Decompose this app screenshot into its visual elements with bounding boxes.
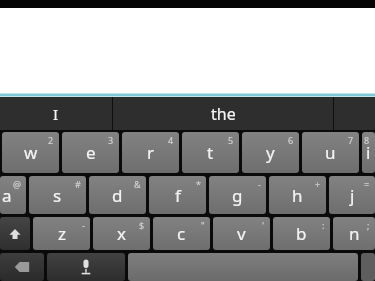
staticText: 6 [288,134,294,146]
staticText: ' [262,219,265,231]
staticText: - [258,178,261,190]
staticText: j [350,184,355,207]
staticText: x [117,222,126,245]
button[interactable]: j [329,176,375,214]
staticText: ; [367,219,370,231]
button[interactable]: n [333,217,375,250]
staticText: 2 [48,134,54,146]
staticText: " [201,219,205,231]
button[interactable]: w [2,132,59,173]
button[interactable]: r [122,132,179,173]
button[interactable]: a [0,176,26,214]
staticText: * [196,178,201,190]
staticText: the [211,103,236,125]
button[interactable]: h [269,176,326,214]
staticText: z [58,222,66,245]
button[interactable]: f [149,176,206,214]
staticText: n [349,222,360,245]
staticText: : [322,219,325,231]
button[interactable]: y [242,132,299,173]
staticText: v [237,222,246,245]
staticText: # [75,178,81,190]
staticText: 5 [228,134,234,146]
button[interactable]: u [302,132,359,173]
staticText: i [366,141,371,164]
button[interactable]: v [213,217,270,250]
button[interactable]: g [209,176,266,214]
staticText: & [134,178,141,190]
staticText: + [315,178,321,190]
staticText: r [147,141,155,164]
button[interactable] [361,253,375,281]
staticText: $ [139,219,145,231]
staticText: w [24,141,38,164]
button[interactable]: s [29,176,86,214]
staticText: a [2,184,12,207]
staticText: = [364,178,370,190]
staticText: s [53,184,62,207]
button[interactable]: t [182,132,239,173]
staticText: 3 [108,134,114,146]
staticText: I [53,104,59,124]
staticText: h [292,184,303,207]
staticText: d [112,184,123,207]
button[interactable]: the [113,97,333,130]
button[interactable]: Backspace [0,253,44,281]
button[interactable]: b [273,217,330,250]
staticText: b [296,222,307,245]
staticText: e [86,141,96,164]
staticText: u [325,141,336,164]
staticText: 8 [364,134,370,146]
button[interactable]: c [153,217,210,250]
staticText: y [266,141,275,164]
button[interactable]: Shift [0,217,30,250]
button[interactable]: Voice input [47,253,125,281]
button[interactable]: d [89,176,146,214]
staticText: @ [13,178,22,190]
button[interactable]: z [33,217,90,250]
button[interactable]: x [93,217,150,250]
staticText: 4 [168,134,174,146]
button[interactable]: Space [128,253,358,281]
staticText: g [232,184,243,207]
staticText: 7 [348,134,354,146]
staticText: t [207,141,214,164]
button[interactable]: i [362,132,375,173]
button[interactable]: I [0,97,112,130]
staticText: f [175,184,181,207]
staticText: c [177,222,186,245]
staticText: - [82,219,85,231]
button[interactable]: e [62,132,119,173]
